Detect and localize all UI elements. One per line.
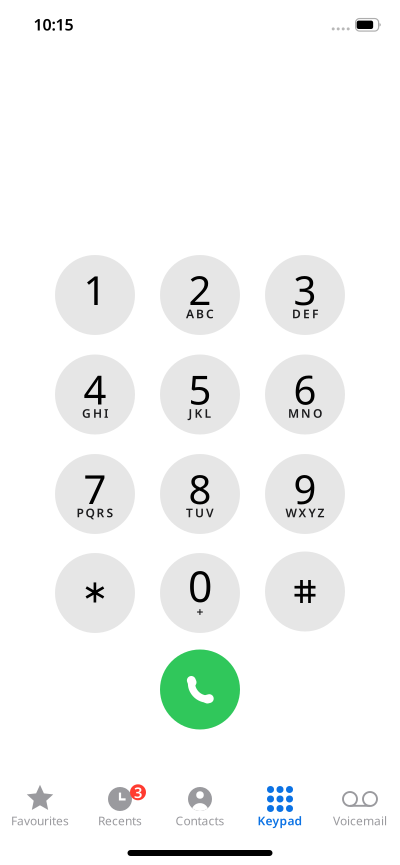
staticText: ABC xyxy=(186,305,214,321)
button[interactable]: Voicemail xyxy=(320,783,400,829)
staticText: Favourites xyxy=(11,812,69,828)
staticText: 3 xyxy=(293,263,316,316)
staticText: TUV xyxy=(186,504,214,520)
staticText: Contacts xyxy=(175,812,224,828)
button[interactable]: 8 xyxy=(160,454,240,534)
button[interactable]: 6 xyxy=(265,354,345,434)
staticText: JKL xyxy=(188,405,211,421)
staticText: 5 xyxy=(188,362,211,415)
staticText: 4 xyxy=(83,362,106,415)
button[interactable]: 7 xyxy=(55,454,135,534)
staticText: Recents xyxy=(98,812,142,828)
staticText: MNO xyxy=(288,405,322,421)
button[interactable]: 5 xyxy=(160,354,240,434)
staticText: Voicemail xyxy=(333,812,387,828)
button[interactable]: 4 xyxy=(55,354,135,434)
staticText: + xyxy=(196,603,203,619)
button[interactable]: 3 xyxy=(265,255,345,335)
button[interactable]: Hash xyxy=(265,551,345,631)
button[interactable]: Call xyxy=(160,649,240,729)
staticText: WXYZ xyxy=(285,504,324,520)
button[interactable]: Contacts xyxy=(160,783,240,829)
staticText: 7 xyxy=(83,462,106,515)
button[interactable]: 0 xyxy=(160,553,240,633)
staticText: 0 xyxy=(188,557,212,614)
button[interactable]: 3 xyxy=(80,783,160,829)
staticText: PQRS xyxy=(76,504,113,520)
staticText: 10:15 xyxy=(33,14,73,35)
button[interactable]: 1 xyxy=(55,255,135,335)
button[interactable]: 9 xyxy=(265,454,345,534)
staticText: ∗ xyxy=(81,573,108,610)
staticText: 3 xyxy=(134,783,142,802)
button[interactable]: Keypad xyxy=(240,783,320,829)
staticText: 9 xyxy=(293,462,316,515)
button[interactable]: ∗ xyxy=(55,553,135,633)
staticText: 8 xyxy=(188,462,211,515)
staticText: 1 xyxy=(83,263,106,316)
staticText: DEF xyxy=(292,305,318,321)
staticText: 6 xyxy=(293,362,316,415)
button[interactable]: 2 xyxy=(160,255,240,335)
staticText: 2 xyxy=(188,263,211,316)
button[interactable]: Favourites xyxy=(0,783,80,829)
staticText: GHI xyxy=(82,405,108,421)
staticText: Keypad xyxy=(257,812,302,828)
